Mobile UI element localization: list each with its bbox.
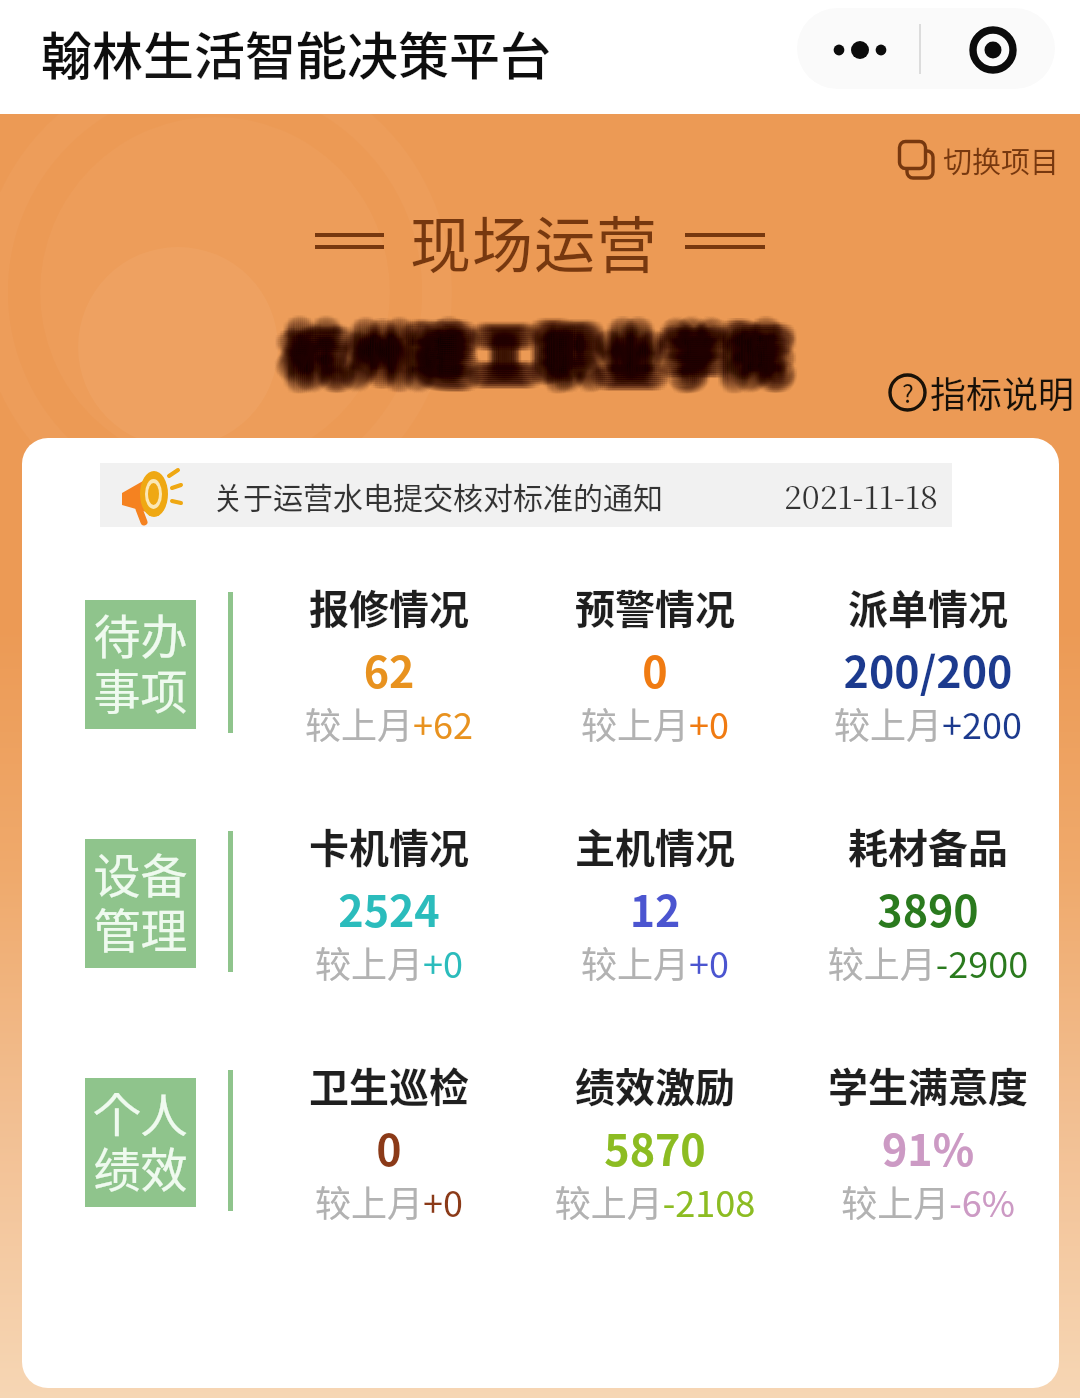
staticText: 杭州建工职业学院	[290, 309, 795, 394]
staticText: 杭州建工职业学院	[286, 301, 791, 386]
staticText: 杭州建工职业学院	[284, 307, 789, 392]
staticText: 指标说明	[930, 366, 1075, 418]
staticText: 杭州建工职业学院	[278, 311, 783, 396]
staticText: 0	[239, 1116, 539, 1178]
button[interactable]: 绩效激励	[505, 1056, 805, 1216]
staticText: 较上月+0	[239, 936, 539, 988]
staticText: 杭州建工职业学院	[286, 303, 791, 388]
staticText: 较上月+0	[505, 697, 805, 749]
button[interactable]: 主机情况	[505, 817, 805, 977]
staticText: 杭州建工职业学院	[288, 309, 793, 394]
staticText: 杭州建工职业学院	[292, 309, 797, 394]
staticText: 杭州建工职业学院	[278, 301, 783, 386]
staticText: 杭州建工职业学院	[280, 309, 785, 394]
staticText: 杭州建工职业学院	[280, 313, 785, 398]
staticText: 关于运营水电提交核对标准的通知	[213, 474, 663, 517]
button[interactable]: 报修情况	[239, 578, 539, 738]
staticText: 杭州建工职业学院	[294, 300, 799, 385]
staticText: 杭州建工职业学院	[296, 301, 801, 386]
button[interactable]: 学生满意度	[778, 1056, 1059, 1216]
staticText: 较上月+0	[505, 936, 805, 988]
staticText: 杭州建工职业学院	[290, 303, 795, 388]
staticText: 杭州建工职业学院	[299, 305, 804, 390]
staticText: 杭州建工职业学院	[273, 309, 778, 394]
button[interactable]: 预警情况	[505, 578, 805, 738]
staticText: 杭州建工职业学院	[275, 315, 780, 400]
staticText: 2524	[239, 877, 539, 939]
button[interactable]: 派单情况	[778, 578, 1059, 738]
staticText: 杭州建工职业学院	[286, 309, 791, 394]
staticText: 主机情况	[505, 817, 805, 875]
staticText: 杭州建工职业学院	[296, 313, 801, 398]
staticText: 杭州建工职业学院	[292, 311, 797, 396]
staticText: 杭州建工职业学院	[277, 301, 782, 386]
button[interactable]: Mini program menu	[797, 8, 1055, 89]
staticText: 杭州建工职业学院	[292, 307, 797, 392]
staticText: 耗材备品	[778, 817, 1059, 875]
staticText: 杭州建工职业学院	[282, 305, 787, 390]
staticText: 杭州建工职业学院	[297, 303, 802, 388]
staticText: 杭州建工职业学院	[290, 305, 795, 390]
staticText: 杭州建工职业学院	[297, 313, 802, 398]
staticText: 杭州建工职业学院	[288, 305, 793, 390]
staticText: 杭州建工职业学院	[284, 300, 789, 385]
staticText: 杭州建工职业学院	[299, 307, 804, 392]
button[interactable]: ?	[888, 366, 1075, 418]
staticText: 杭州建工职业学院	[280, 315, 785, 400]
button[interactable]: 个人	[85, 1078, 196, 1207]
staticText: 杭州建工职业学院	[290, 298, 795, 383]
staticText: 杭州建工职业学院	[277, 313, 782, 398]
staticText: 杭州建工职业学院	[288, 313, 793, 398]
staticText: 杭州建工职业学院	[282, 319, 787, 404]
staticText: 杭州建工职业学院	[278, 313, 783, 398]
staticText: 较上月+0	[239, 1175, 539, 1227]
staticText: 杭州建工职业学院	[280, 307, 785, 392]
staticText: 杭州建工职业学院	[290, 307, 795, 392]
staticText: 杭州建工职业学院	[292, 301, 797, 386]
staticText: 杭州建工职业学院	[284, 315, 789, 400]
staticText: 杭州建工职业学院	[284, 319, 789, 404]
staticText: 报修情况	[239, 578, 539, 636]
button[interactable]: 切换项目	[898, 139, 1060, 181]
button[interactable]: 卫生巡检	[239, 1056, 539, 1216]
staticText: 杭州建工职业学院	[286, 307, 791, 392]
staticText: 设备	[85, 838, 196, 906]
button[interactable]: 待办	[85, 600, 196, 729]
staticText: 5870	[505, 1116, 805, 1178]
staticText: 杭州建工职业学院	[273, 307, 778, 392]
staticText: 62	[239, 638, 539, 700]
staticText: 杭州建工职业学院	[294, 315, 799, 400]
button[interactable]: 耗材备品	[778, 817, 1059, 977]
staticText: 杭州建工职业学院	[284, 305, 789, 390]
staticText: 杭州建工职业学院	[290, 320, 795, 405]
staticText: 杭州建工职业学院	[284, 301, 789, 386]
staticText: 12	[505, 877, 805, 939]
staticText: 杭州建工职业学院	[277, 303, 782, 388]
staticText: 杭州建工职业学院	[297, 305, 802, 390]
staticText: 杭州建工职业学院	[286, 305, 791, 390]
staticText: 杭州建工职业学院	[282, 301, 787, 386]
staticText: 学生满意度	[778, 1056, 1059, 1114]
staticText: 杭州建工职业学院	[277, 315, 782, 400]
staticText: 杭州建工职业学院	[286, 320, 791, 405]
staticText: 杭州建工职业学院	[275, 311, 780, 396]
staticText: 杭州建工职业学院	[290, 311, 795, 396]
staticText: 杭州建工职业学院	[292, 315, 797, 400]
staticText: 杭州建工职业学院	[282, 315, 787, 400]
staticText: 切换项目	[943, 139, 1060, 181]
staticText: 绩效	[85, 1132, 196, 1200]
button[interactable]: 卡机情况	[239, 817, 539, 977]
staticText: ?	[902, 374, 914, 410]
staticText: 杭州建工职业学院	[288, 300, 793, 385]
staticText: 杭州建工职业学院	[280, 319, 785, 404]
staticText: 杭州建工职业学院	[292, 319, 797, 404]
staticText: 杭州建工职业学院	[277, 307, 782, 392]
staticText: 杭州建工职业学院	[284, 303, 789, 388]
button[interactable]: 关于运营水电提交核对标准的通知	[100, 463, 952, 527]
staticText: 杭州建工职业学院	[290, 317, 795, 402]
button[interactable]: 设备	[85, 839, 196, 968]
staticText: 杭州建工职业学院	[290, 313, 795, 398]
staticText: 2021-11-18	[784, 472, 938, 518]
staticText: 杭州建工职业学院	[275, 307, 780, 392]
staticText: 现场运营	[410, 197, 659, 285]
